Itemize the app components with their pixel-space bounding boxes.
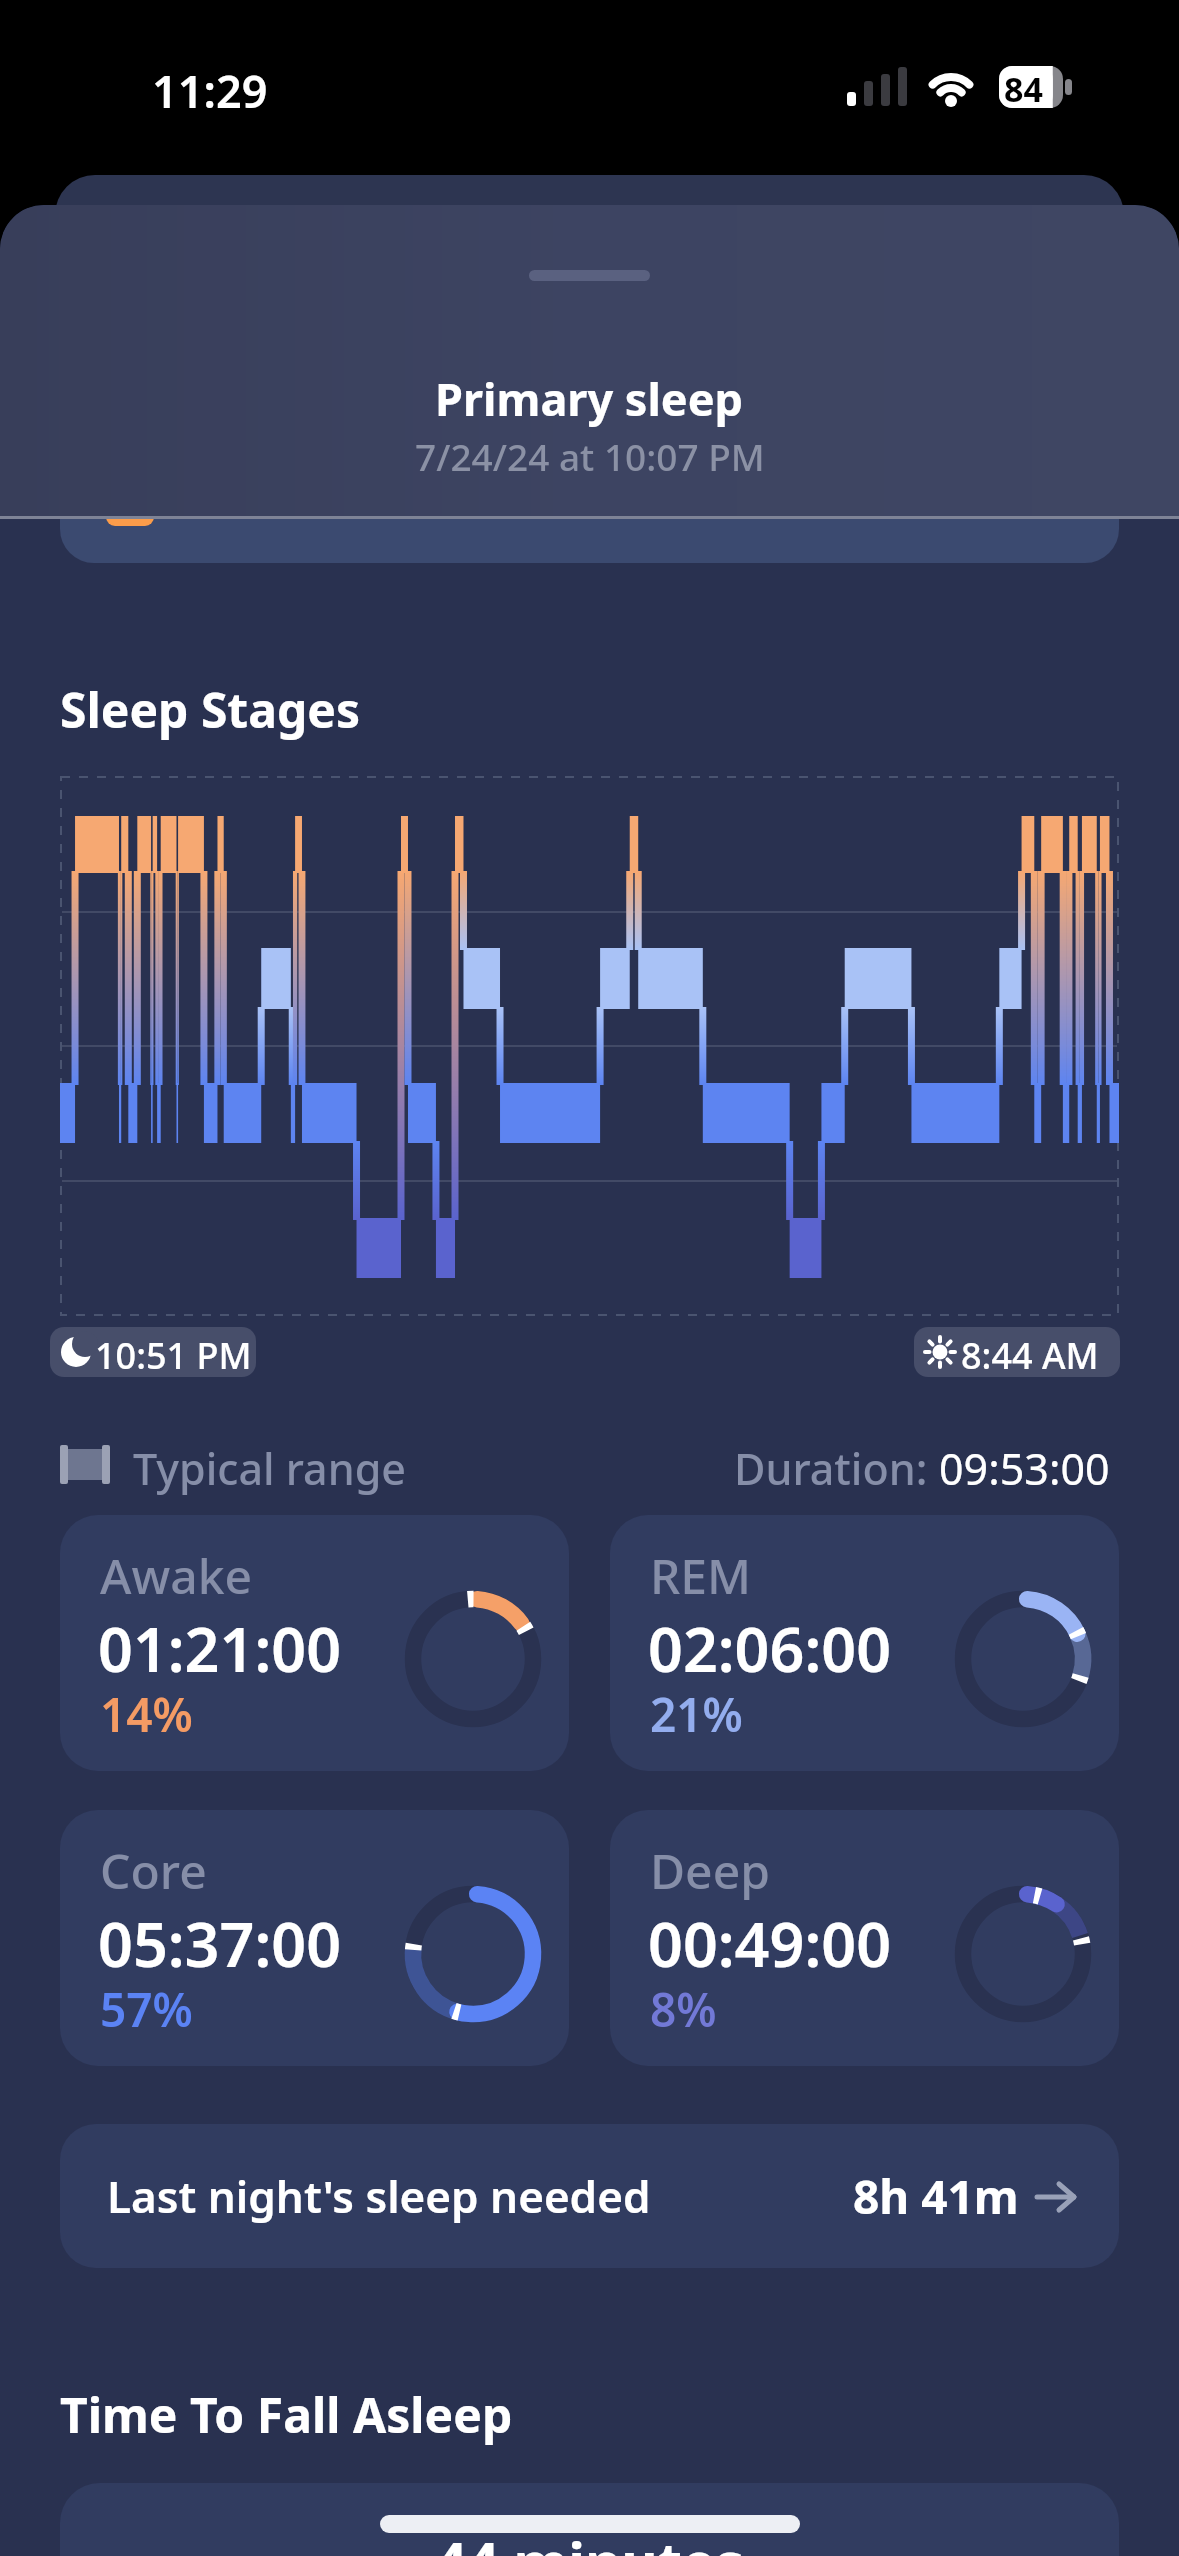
staticText: Deep — [650, 1838, 770, 1903]
staticText: 44 minutes — [435, 2523, 744, 2556]
staticText: 7/24/24 at 10:07 PM — [415, 431, 765, 481]
staticText: 21% — [650, 1683, 743, 1746]
staticText: 8h 41m — [853, 2165, 1019, 2228]
staticText: Primary sleep — [435, 368, 744, 429]
staticText: Sleep Stages — [60, 677, 361, 742]
staticText: 01:21:00 — [98, 1607, 342, 1690]
button[interactable]: 10:51 PM — [50, 1327, 256, 1377]
staticText: 00:49:00 — [648, 1902, 892, 1985]
staticText: Last night's sleep needed — [107, 2166, 651, 2226]
staticText: Time To Fall Asleep — [60, 2382, 513, 2447]
staticText: 14% — [100, 1683, 193, 1746]
staticText: Core — [100, 1838, 207, 1903]
button[interactable]: Core — [60, 1810, 569, 2066]
staticText: Duration: — [734, 1439, 939, 1498]
staticText: 8:44 AM — [961, 1331, 1099, 1377]
staticText: Awake — [100, 1543, 253, 1608]
staticText: 84 — [1004, 66, 1043, 112]
staticText: REM — [650, 1543, 752, 1608]
button[interactable]: Last night's sleep needed — [60, 2124, 1119, 2268]
button[interactable]: 8:44 AM — [914, 1327, 1120, 1377]
staticText: 09:53:00 — [939, 1439, 1110, 1498]
staticText: 57% — [100, 1978, 193, 2041]
button[interactable]: Deep — [610, 1810, 1119, 2066]
button[interactable]: Awake — [60, 1515, 569, 1771]
button[interactable]: 44 minutes — [60, 2483, 1119, 2556]
staticText: Typical range — [133, 1439, 407, 1498]
button[interactable]: REM — [610, 1515, 1119, 1771]
staticText: 11:29 — [152, 60, 268, 121]
staticText: 8% — [650, 1978, 717, 2041]
staticText: 10:51 PM — [95, 1331, 252, 1377]
staticText: 05:37:00 — [98, 1902, 342, 1985]
staticText: 02:06:00 — [648, 1607, 892, 1690]
